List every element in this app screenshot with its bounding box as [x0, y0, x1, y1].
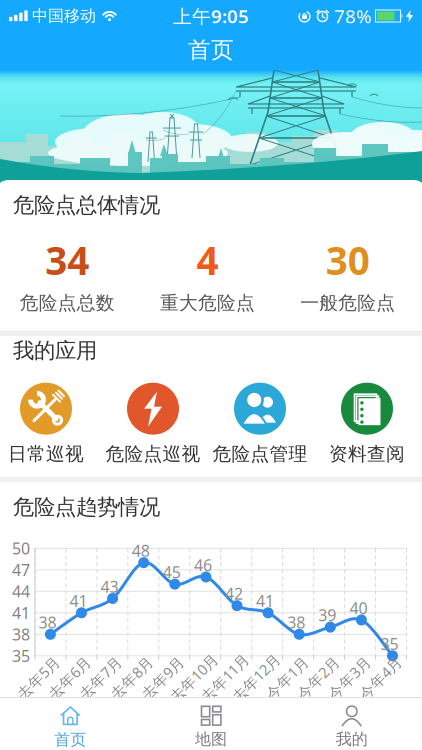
staticText: 去年6月 [43, 668, 96, 688]
staticText: 38 [287, 612, 305, 633]
button[interactable]: 危险点管理 [206, 383, 313, 466]
staticText: 地图 [195, 729, 227, 749]
staticText: 去年10月 [163, 668, 224, 688]
staticText: 日常巡视 [8, 443, 84, 466]
staticText: 35 [380, 633, 398, 654]
staticText: 39 [318, 604, 336, 626]
staticText: 38 [12, 624, 30, 645]
staticText: 78% [334, 4, 372, 28]
staticText: 危险点趋势情况 [13, 494, 160, 520]
button[interactable]: 日常巡视 [0, 383, 99, 466]
staticText: 今年3月 [323, 668, 376, 688]
staticText: 48 [132, 540, 150, 561]
staticText: 50 [12, 538, 30, 559]
staticText: 今年4月 [354, 668, 407, 688]
staticText: 30 [326, 234, 370, 285]
staticText: 35 [12, 645, 30, 666]
staticText: 4 [196, 234, 218, 285]
staticText: 41 [69, 590, 87, 611]
button[interactable]: 地图 [141, 705, 281, 749]
staticText: 40 [349, 597, 367, 619]
staticText: 去年12月 [226, 668, 287, 688]
staticText: 41 [256, 590, 274, 611]
staticText: 危险点巡视 [105, 443, 200, 466]
button[interactable]: 首页 [0, 705, 141, 749]
staticText: 42 [225, 583, 243, 604]
staticText: 重大危险点 [160, 292, 255, 314]
staticText: 首页 [54, 730, 86, 749]
staticText: 45 [163, 561, 181, 583]
staticText: 去年9月 [136, 668, 189, 688]
staticText: 危险点总体情况 [13, 192, 160, 218]
staticText: 去年7月 [74, 668, 127, 688]
staticText: 我的应用 [13, 337, 97, 364]
staticText: 38 [38, 612, 56, 633]
staticText: 危险点管理 [212, 443, 307, 466]
button[interactable]: 危险点巡视 [99, 383, 206, 466]
staticText: 47 [12, 559, 30, 580]
staticText: 中国移动 [32, 6, 96, 26]
staticText: 46 [194, 554, 212, 576]
staticText: 41 [12, 602, 30, 623]
staticText: 一般危险点 [300, 292, 395, 314]
staticText: 上午9:05 [173, 4, 249, 28]
staticText: 首页 [188, 36, 234, 64]
staticText: 43 [101, 576, 119, 597]
staticText: 今年2月 [292, 668, 345, 688]
staticText: 去年11月 [194, 668, 255, 688]
button[interactable]: 我的 [281, 705, 422, 749]
button[interactable]: 资料查阅 [313, 383, 420, 466]
staticText: 去年5月 [12, 668, 65, 688]
staticText: 去年8月 [105, 668, 158, 688]
staticText: 我的 [336, 729, 368, 749]
staticText: 34 [45, 234, 89, 285]
staticText: 44 [12, 581, 30, 602]
staticText: 今年1月 [261, 668, 314, 688]
staticText: 资料查阅 [329, 443, 405, 466]
staticText: 危险点总数 [20, 292, 115, 314]
